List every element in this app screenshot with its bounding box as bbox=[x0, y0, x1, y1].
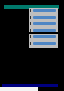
button[interactable] bbox=[29, 42, 58, 45]
button[interactable] bbox=[29, 16, 58, 19]
button[interactable]: App bar bbox=[4, 5, 59, 9]
button[interactable] bbox=[29, 35, 58, 38]
button[interactable] bbox=[29, 29, 58, 32]
button[interactable] bbox=[29, 22, 58, 25]
button[interactable] bbox=[29, 9, 58, 12]
